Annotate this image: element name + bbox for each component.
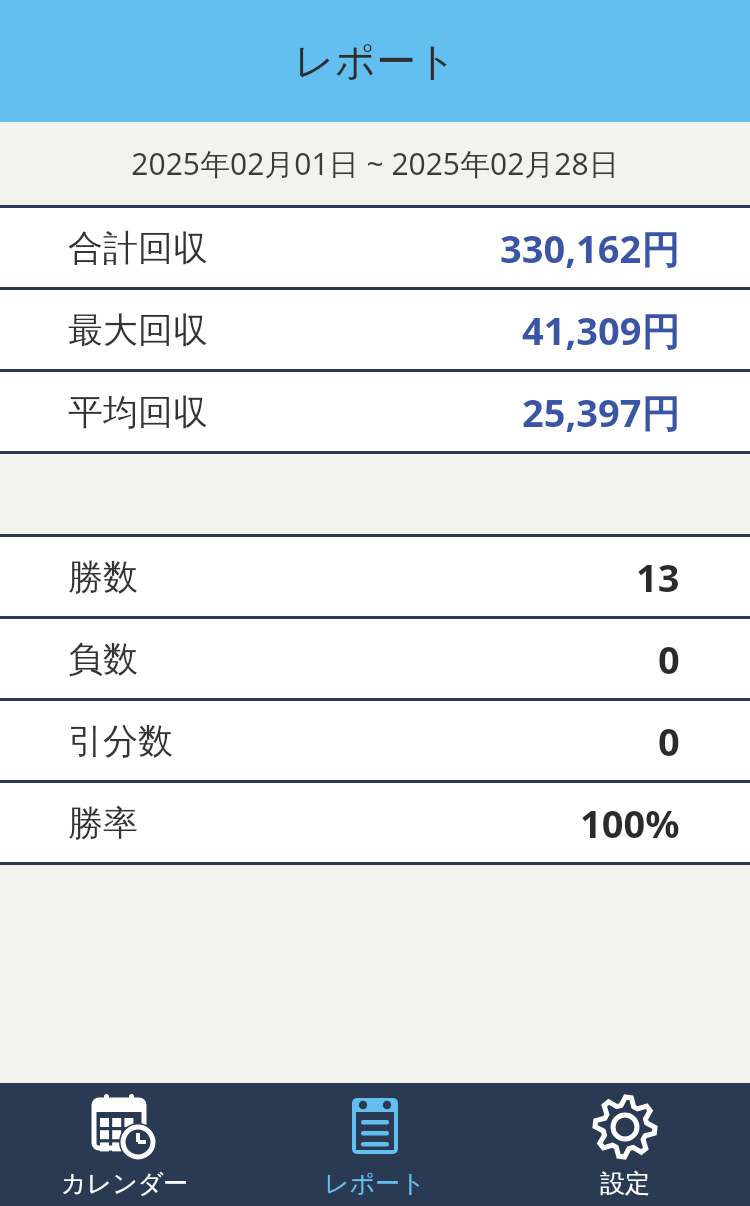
button[interactable]: 設定 [500,1083,750,1206]
staticText: 設定 [600,1168,650,1199]
staticText: 最大回収 [68,308,208,352]
staticText: 引分数 [68,719,173,763]
staticText: 100% [580,797,680,849]
staticText: カレンダー [61,1168,189,1199]
staticText: 負数 [68,637,138,681]
staticText: レポート [294,36,457,86]
button[interactable]: カレンダー [0,1083,250,1206]
button[interactable]: 引分数 [0,701,750,780]
staticText: 330,162円 [500,222,680,274]
button[interactable]: 勝率 [0,783,750,862]
staticText: 13 [636,551,680,603]
staticText: 平均回収 [68,390,208,434]
staticText: 勝数 [68,555,138,599]
staticText: 2025年02月01日 ~ 2025年02月28日 [131,143,619,184]
staticText: 25,397円 [522,386,680,438]
staticText: 0 [658,633,680,685]
button[interactable]: 合計回収 [0,208,750,287]
staticText: 41,309円 [522,304,680,356]
button[interactable]: 平均回収 [0,372,750,451]
staticText: 合計回収 [68,226,208,270]
button[interactable]: 負数 [0,619,750,698]
staticText: 0 [658,715,680,767]
button[interactable]: レポート [250,1083,500,1206]
button[interactable]: 勝数 [0,537,750,616]
staticText: レポート [324,1168,426,1199]
button[interactable]: 最大回収 [0,290,750,369]
staticText: 勝率 [68,801,138,845]
